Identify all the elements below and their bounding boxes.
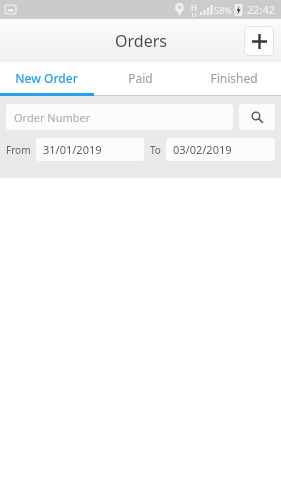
button[interactable]: 31/01/2019 <box>36 138 144 161</box>
staticText: Finished <box>210 70 258 86</box>
staticText: 22:42 <box>247 2 276 17</box>
button[interactable]: Search <box>239 104 275 130</box>
staticText: 03/02/2019 <box>173 142 232 157</box>
button[interactable]: Order Number <box>6 104 233 130</box>
staticText: Paid <box>128 70 153 86</box>
button[interactable]: Paid <box>93 62 187 93</box>
staticText: Order Number <box>14 110 91 125</box>
staticText: 58% <box>214 4 232 16</box>
staticText: New Order <box>15 70 78 86</box>
button[interactable]: 03/02/2019 <box>166 138 275 161</box>
staticText: From <box>6 143 31 157</box>
button[interactable]: Add new order <box>244 26 274 56</box>
staticText: 31/01/2019 <box>43 142 102 157</box>
staticText: H <box>191 2 197 13</box>
button[interactable]: Finished <box>187 62 281 93</box>
staticText: Orders <box>115 30 167 52</box>
button[interactable]: New Order <box>0 62 93 93</box>
staticText: To <box>150 143 161 157</box>
